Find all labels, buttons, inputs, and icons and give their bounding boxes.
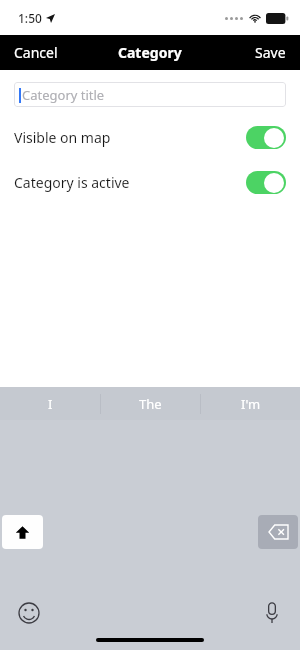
button[interactable]: Dictation [264,601,280,625]
staticText: 1:50 [18,10,42,26]
button[interactable]: Visible on map [0,115,300,159]
button[interactable]: The [101,387,200,420]
button[interactable]: Category title [14,82,286,107]
staticText: Category [118,43,182,62]
staticText: Visible on map [14,128,111,147]
button[interactable]: Save [241,35,300,70]
button[interactable]: Toggle [246,171,286,194]
button[interactable]: Backspace [258,515,298,549]
staticText: Save [255,43,286,62]
button[interactable]: I'm [201,387,300,420]
staticText: I'm [241,395,261,413]
button[interactable]: Category is active [0,160,300,204]
button[interactable]: Toggle [246,126,286,149]
staticText: I [48,395,53,413]
staticText: The [139,395,162,413]
button[interactable]: Emoji [18,602,40,624]
staticText: Cancel [14,43,58,62]
button[interactable]: Cancel [0,35,72,70]
staticText: Category title [22,86,105,104]
button[interactable]: Shift [2,515,43,549]
button[interactable]: I [0,387,100,420]
staticText: Category is active [14,173,130,192]
